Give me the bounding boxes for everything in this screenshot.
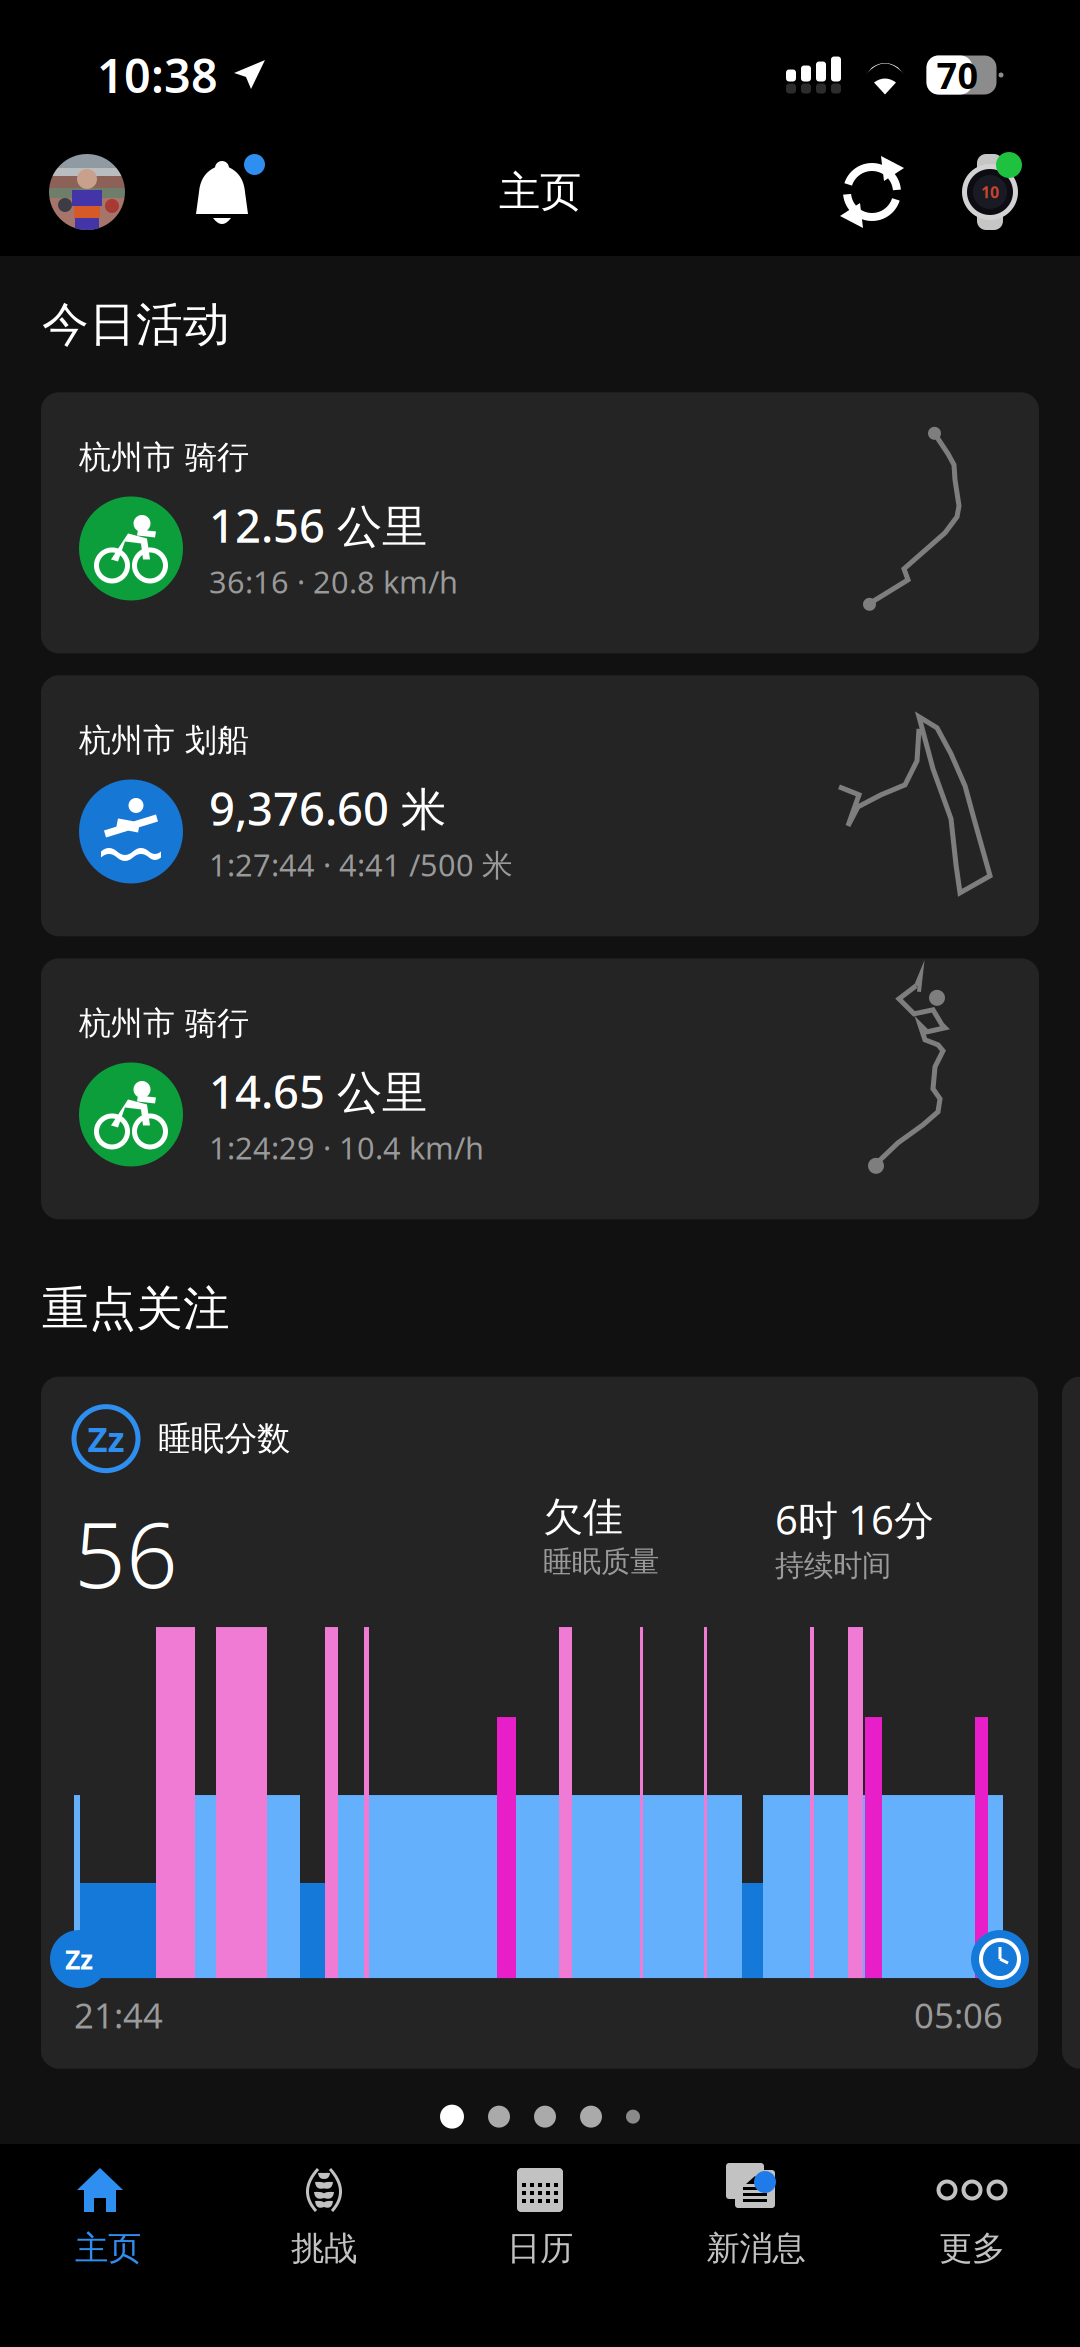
staticText: 36:16 · 20.8 km/h xyxy=(209,561,458,602)
button[interactable]: 主页 xyxy=(0,2144,216,2347)
staticText: 10 xyxy=(981,181,999,203)
button[interactable]: 新消息 xyxy=(648,2144,864,2347)
staticText: 主页 xyxy=(75,2235,141,2275)
staticText: 14.65 公里 xyxy=(209,1061,427,1121)
staticText: 日历 xyxy=(507,2235,573,2275)
button[interactable]: 杭州市 骑行 xyxy=(0,958,1080,1241)
button[interactable]: 新消息 xyxy=(648,2151,864,2347)
staticText: 70 xyxy=(936,51,978,99)
button[interactable]: 更多 xyxy=(864,2151,1080,2347)
staticText: 21:44 xyxy=(74,1992,163,2038)
staticText: 主页 xyxy=(75,2228,141,2269)
button[interactable]: 日历 xyxy=(432,2144,648,2347)
button[interactable]: Zz xyxy=(41,1377,1038,2069)
staticText: Zz xyxy=(65,1941,93,1977)
staticText: 1:27:44 · 4:41 /500 米 xyxy=(209,844,513,885)
staticText: 05:06 xyxy=(914,1992,1003,2038)
staticText: 持续时间 xyxy=(775,1548,891,1584)
staticText: 挑战 xyxy=(291,2228,357,2269)
staticText: 杭州市 骑行 xyxy=(79,438,249,477)
staticText: 日历 xyxy=(507,2228,573,2269)
button[interactable]: 杭州市 划船 xyxy=(0,675,1080,958)
button[interactable]: 挑战 xyxy=(216,2144,432,2347)
staticText: 6时 16分 xyxy=(775,1493,934,1546)
staticText: 杭州市 骑行 xyxy=(79,1004,249,1043)
staticText: 睡眠分数 xyxy=(158,1418,290,1459)
staticText: 主页 xyxy=(499,167,581,217)
staticText: 新消息 xyxy=(706,2235,805,2275)
button[interactable]: 挑战 xyxy=(216,2151,432,2347)
button[interactable]: 日历 xyxy=(432,2151,648,2347)
staticText: 欠佳 xyxy=(543,1493,623,1542)
button[interactable]: 通知 xyxy=(125,156,279,228)
staticText: 重点关注 xyxy=(42,1280,230,1338)
button[interactable]: 主页 xyxy=(0,2151,216,2347)
button[interactable]: 杭州市 骑行 xyxy=(0,392,1080,675)
staticText: 睡眠质量 xyxy=(543,1544,659,1580)
staticText: 12.56 公里 xyxy=(209,495,427,555)
staticText: 56 xyxy=(74,1493,178,1613)
staticText: 新消息 xyxy=(706,2228,805,2269)
staticText: 1:24:29 · 10.4 km/h xyxy=(209,1127,484,1168)
staticText: 更多 xyxy=(939,2228,1005,2269)
staticText: 10:38 xyxy=(97,44,218,106)
staticText: 9,376.60 米 xyxy=(209,778,446,838)
staticText: 杭州市 划船 xyxy=(79,721,249,760)
staticText: 更多 xyxy=(939,2235,1005,2275)
button[interactable]: 同步 xyxy=(834,154,950,230)
button[interactable]: 个人资料 xyxy=(49,154,125,230)
staticText: 今日活动 xyxy=(42,296,230,353)
staticText: 挑战 xyxy=(291,2235,357,2275)
button[interactable]: 设备 xyxy=(950,152,1034,232)
staticText: Zz xyxy=(87,1416,124,1462)
button[interactable]: 更多 xyxy=(864,2144,1080,2347)
